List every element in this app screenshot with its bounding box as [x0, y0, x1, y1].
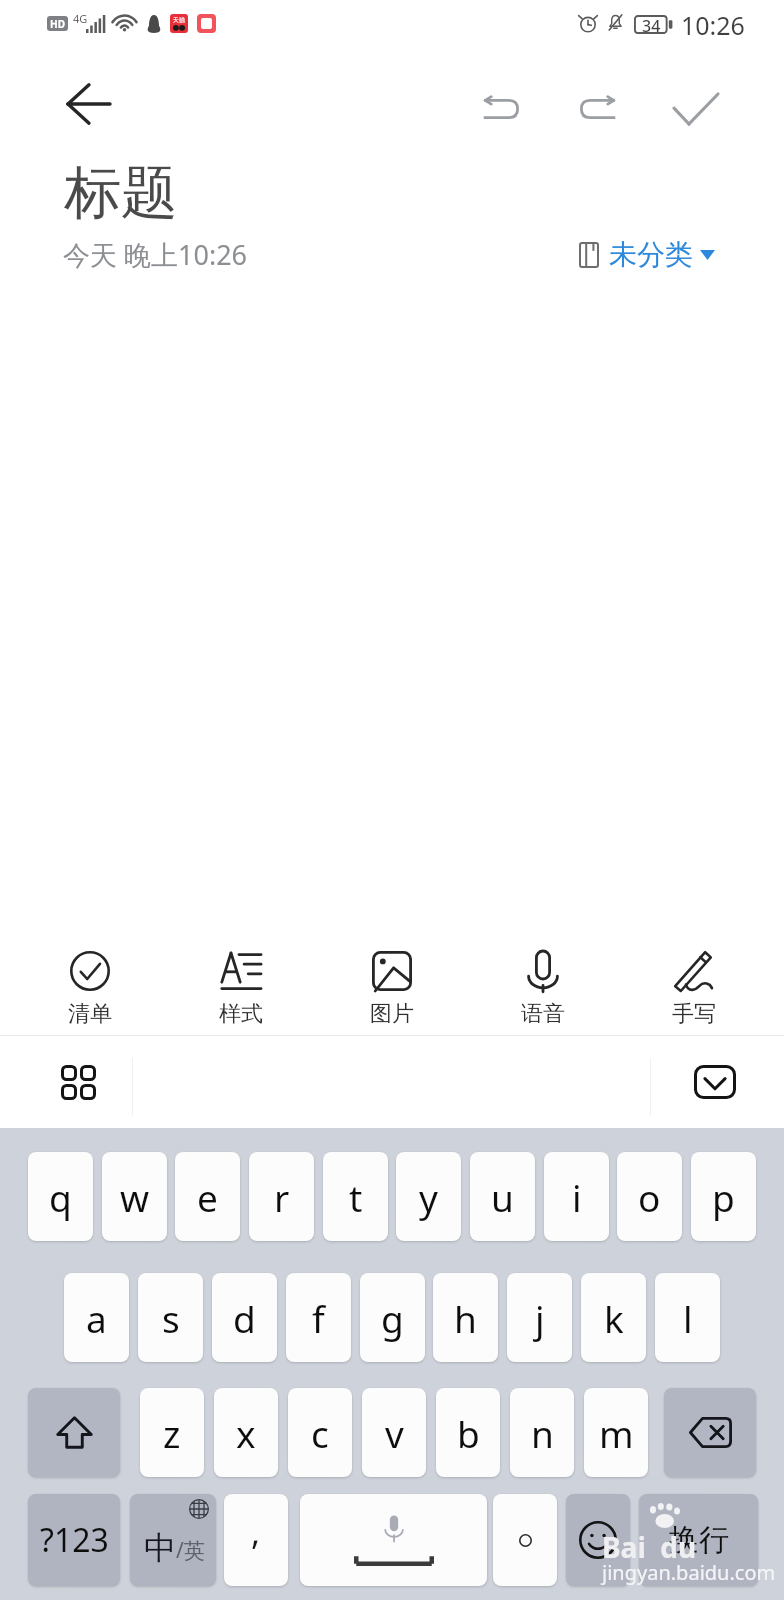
staticText: 4G — [73, 11, 88, 26]
staticText: e — [197, 1172, 218, 1222]
button[interactable]: k — [581, 1273, 646, 1362]
button[interactable]: w — [102, 1152, 167, 1241]
button[interactable]: Backspace — [664, 1388, 756, 1477]
button[interactable]: i — [544, 1152, 609, 1241]
button[interactable]: 图片 — [317, 920, 467, 1028]
button[interactable]: Keyboard panel — [48, 1057, 109, 1107]
button[interactable]: Undo — [466, 74, 536, 144]
staticText: 34 — [642, 15, 661, 34]
staticText: f — [312, 1293, 325, 1343]
staticText: r — [274, 1172, 290, 1222]
button[interactable]: Redo — [563, 74, 633, 144]
button[interactable]: z — [140, 1388, 204, 1477]
button[interactable]: g — [360, 1273, 425, 1362]
button[interactable]: ?123 — [28, 1494, 120, 1586]
staticText: t — [349, 1172, 363, 1222]
staticText: 清单 — [68, 1000, 112, 1028]
button[interactable]: u — [470, 1152, 535, 1241]
staticText: p — [712, 1172, 735, 1222]
staticText: jingyan.baidu.com — [602, 1559, 776, 1586]
button[interactable]: Hide keyboard — [685, 1057, 745, 1107]
staticText: 语音 — [521, 1000, 565, 1028]
button[interactable]: o — [617, 1152, 682, 1241]
staticText: z — [163, 1408, 181, 1458]
staticText: d — [233, 1293, 256, 1343]
button[interactable]: c — [288, 1388, 352, 1477]
button[interactable]: s — [138, 1273, 203, 1362]
staticText: v — [385, 1408, 404, 1458]
button[interactable]: b — [436, 1388, 500, 1477]
staticText: 图片 — [370, 1000, 414, 1028]
button[interactable]: 换行 — [639, 1494, 758, 1586]
button[interactable]: r — [249, 1152, 314, 1241]
button[interactable]: x — [214, 1388, 278, 1477]
staticText: , — [251, 1509, 261, 1555]
button[interactable]: d — [212, 1273, 277, 1362]
staticText: 标题 — [64, 157, 178, 229]
staticText: x — [236, 1408, 256, 1458]
button[interactable]: Period — [493, 1494, 557, 1586]
staticText: 换行 — [669, 1521, 729, 1559]
staticText: a — [86, 1293, 107, 1343]
button[interactable]: f — [286, 1273, 351, 1362]
staticText: /英 — [176, 1536, 205, 1565]
staticText: s — [162, 1293, 180, 1343]
button[interactable]: 语音 — [468, 920, 618, 1028]
button[interactable]: 样式 — [166, 920, 316, 1028]
staticText: g — [381, 1293, 404, 1343]
staticText: j — [535, 1293, 545, 1343]
button[interactable]: 清单 — [15, 920, 165, 1028]
button[interactable]: Space — [300, 1494, 487, 1586]
staticText: 中 — [144, 1528, 176, 1568]
button[interactable]: e — [175, 1152, 240, 1241]
button[interactable]: 未分类 — [575, 233, 719, 276]
button[interactable]: Done — [661, 74, 731, 144]
staticText: HD — [50, 17, 65, 31]
button[interactable]: Comma — [224, 1494, 288, 1586]
button[interactable]: q — [28, 1152, 93, 1241]
staticText: k — [604, 1293, 624, 1343]
button[interactable]: Shift — [28, 1388, 120, 1477]
button[interactable]: p — [691, 1152, 756, 1241]
button[interactable]: j — [507, 1273, 572, 1362]
staticText: ?123 — [40, 1518, 109, 1562]
button[interactable]: l — [655, 1273, 720, 1362]
staticText: Bai du — [602, 1528, 697, 1566]
staticText: b — [457, 1408, 480, 1458]
staticText: 10:26 — [681, 8, 745, 42]
staticText: 样式 — [219, 1000, 263, 1028]
button[interactable]: v — [362, 1388, 426, 1477]
staticText: n — [531, 1408, 554, 1458]
staticText: q — [49, 1172, 72, 1222]
staticText: i — [572, 1172, 582, 1222]
staticText: m — [599, 1408, 634, 1458]
staticText: c — [311, 1408, 329, 1458]
button[interactable]: a — [64, 1273, 129, 1362]
staticText: u — [491, 1172, 514, 1222]
button[interactable]: Emoji — [566, 1494, 630, 1586]
staticText: y — [419, 1172, 438, 1222]
staticText: o — [638, 1172, 661, 1222]
button[interactable]: y — [396, 1152, 461, 1241]
button[interactable]: h — [433, 1273, 498, 1362]
button[interactable]: Switch language — [130, 1494, 216, 1586]
staticText: 今天 晚上10:26 — [63, 236, 248, 273]
staticText: 未分类 — [609, 237, 693, 272]
staticText: l — [683, 1293, 693, 1343]
button[interactable]: n — [510, 1388, 574, 1477]
staticText: h — [454, 1293, 477, 1343]
staticText: w — [120, 1172, 150, 1222]
button[interactable]: m — [584, 1388, 648, 1477]
staticText: 手写 — [672, 1000, 716, 1028]
button[interactable]: t — [323, 1152, 388, 1241]
staticText: 天猫 — [173, 16, 185, 24]
button[interactable]: 手写 — [619, 920, 769, 1028]
button[interactable]: Back — [59, 74, 119, 134]
